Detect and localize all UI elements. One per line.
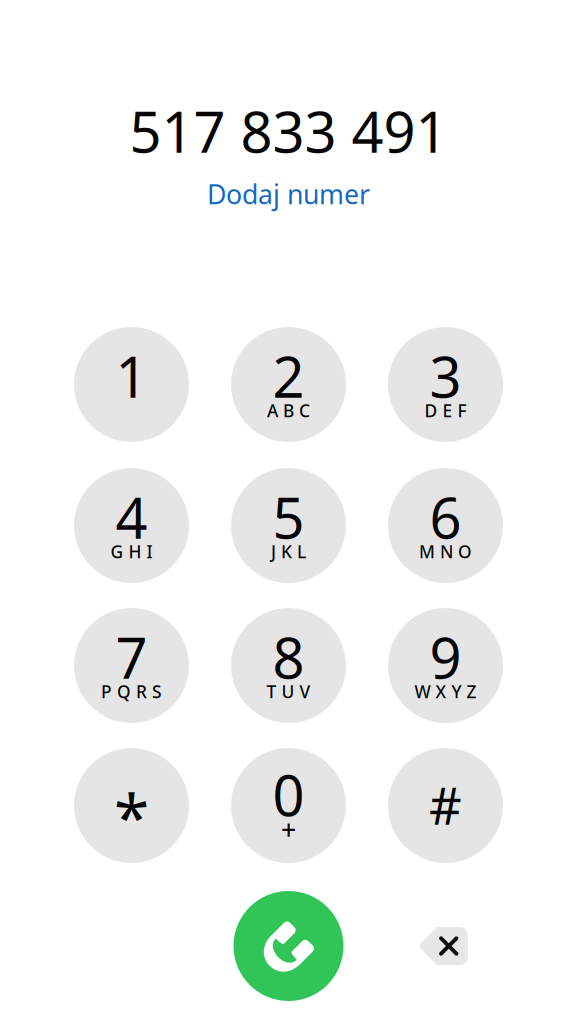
button[interactable]: # [388, 748, 503, 863]
staticText: M N O [419, 540, 472, 563]
staticText: 9 [429, 620, 461, 694]
staticText: Dodaj numer [207, 176, 370, 212]
staticText: 0 [272, 757, 304, 832]
staticText: 7 [115, 620, 147, 694]
staticText: P Q R S [101, 680, 162, 703]
button[interactable]: * [74, 748, 189, 863]
staticText: 3 [429, 339, 461, 413]
button[interactable]: Call [233, 891, 343, 1001]
staticText: 5 [272, 480, 304, 554]
button[interactable]: 7 PQRS [74, 608, 189, 723]
staticText: 8 [272, 620, 304, 694]
button[interactable]: 0 + [231, 748, 346, 863]
button[interactable]: 3 DEF [388, 327, 503, 442]
button[interactable]: 8 TUV [231, 608, 346, 723]
staticText: + [281, 812, 296, 847]
staticText: W X Y Z [414, 680, 476, 703]
staticText: # [429, 771, 462, 839]
button[interactable]: 1 [74, 327, 189, 442]
staticText: 1 [115, 339, 147, 413]
button[interactable]: 6 MNO [388, 468, 503, 583]
staticText: 2 [272, 339, 304, 413]
button[interactable]: 5 JKL [231, 468, 346, 583]
staticText: G H I [110, 540, 152, 563]
button[interactable]: 2 ABC [231, 327, 346, 442]
staticText: T U V [266, 680, 310, 703]
staticText: * [114, 774, 149, 859]
staticText: D E F [424, 399, 466, 422]
staticText: A B C [267, 399, 310, 422]
staticText: 4 [115, 480, 147, 554]
staticText: J K L [271, 540, 306, 563]
button[interactable]: Delete [406, 909, 480, 983]
button[interactable]: Dodaj numer [168, 174, 408, 214]
staticText: 517 833 491 [129, 94, 447, 168]
button[interactable]: 9 WXYZ [388, 608, 503, 723]
staticText: 6 [429, 480, 461, 554]
button[interactable]: 4 GHI [74, 468, 189, 583]
